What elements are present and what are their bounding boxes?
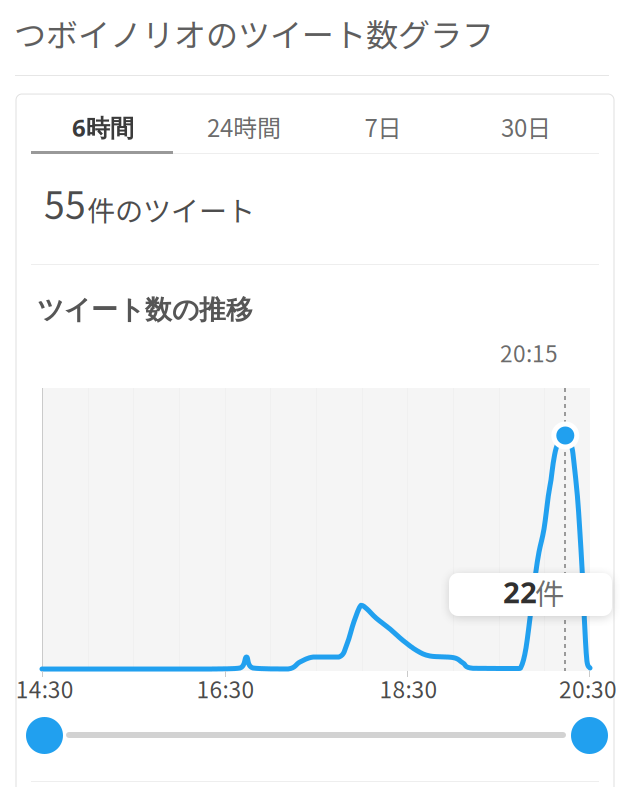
staticText: 7日: [364, 109, 401, 144]
staticText: 20:15: [500, 336, 558, 369]
button[interactable]: Range start: [26, 717, 63, 754]
staticText: つボイノリオのツイート数グラフ: [14, 10, 494, 56]
staticText: 件: [535, 571, 564, 613]
button[interactable]: 30日: [453, 97, 599, 156]
staticText: 6時間: [72, 111, 134, 144]
button[interactable]: 6時間: [31, 98, 175, 157]
button[interactable]: Range end: [571, 717, 608, 754]
staticText: 30日: [501, 109, 551, 144]
button[interactable]: 7日: [313, 97, 453, 156]
button[interactable]: 24時間: [175, 97, 313, 156]
staticText: 22: [503, 572, 537, 612]
staticText: 14:30: [16, 672, 74, 705]
staticText: 24時間: [207, 109, 281, 144]
staticText: 55: [44, 176, 86, 230]
staticText: 件のツイート: [87, 189, 255, 229]
staticText: 18:30: [379, 672, 437, 705]
staticText: ツイート数の推移: [37, 293, 253, 327]
staticText: 16:30: [196, 672, 254, 705]
staticText: 20:30: [559, 672, 617, 705]
